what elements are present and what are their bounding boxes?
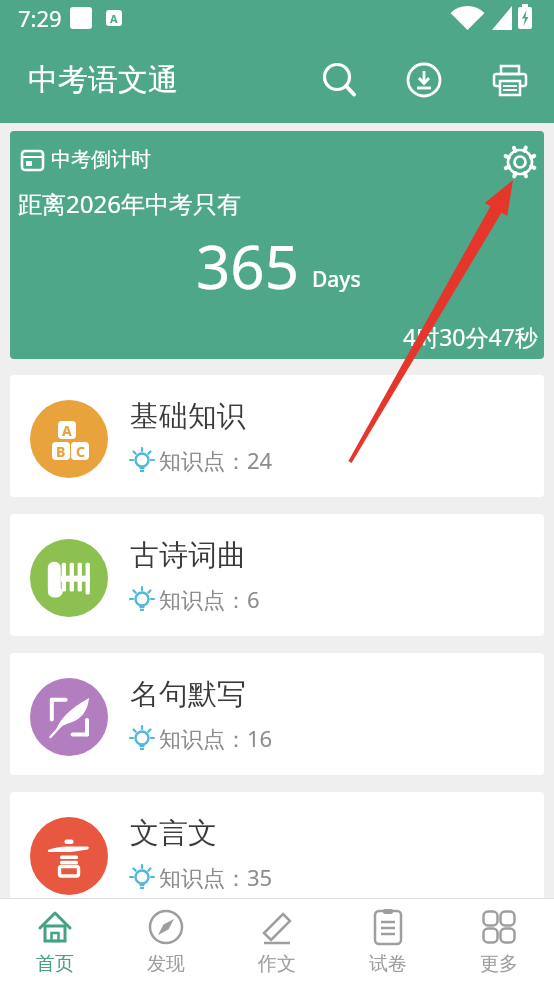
button[interactable]: 试卷 [332, 899, 443, 984]
staticText: 发现 [147, 952, 185, 976]
staticText: 名句默写 [130, 676, 246, 713]
button[interactable]: 首页 [0, 899, 110, 984]
button[interactable]: 发现 [110, 899, 221, 984]
staticText: 7:29 [18, 3, 62, 33]
staticText: 基础知识 [130, 398, 246, 435]
staticText: A [62, 421, 72, 439]
staticText: 文言文 [130, 815, 217, 852]
staticText: 作文 [258, 952, 296, 976]
staticText: 距离2026年中考只有 [18, 187, 241, 220]
button[interactable]: 更多 [443, 899, 554, 984]
button[interactable] [498, 140, 542, 184]
staticText: 365 [196, 225, 299, 307]
button[interactable]: A [10, 375, 544, 497]
staticText: C [76, 442, 85, 460]
staticText: 4时30分47秒 [403, 321, 538, 352]
button[interactable] [482, 52, 538, 108]
staticText: 古诗词曲 [130, 537, 246, 574]
button[interactable] [396, 52, 452, 108]
staticText: 中考倒计时 [51, 147, 151, 172]
staticText: 首页 [36, 952, 74, 976]
staticText: 更多 [480, 952, 518, 976]
staticText: 知识点：35 [159, 862, 273, 892]
button[interactable]: 作文 [221, 899, 332, 984]
button[interactable] [310, 52, 366, 108]
staticText: Days [312, 265, 361, 294]
button[interactable]: 文言文 [10, 792, 544, 914]
staticText: 知识点：24 [159, 445, 273, 475]
staticText: A [110, 11, 118, 26]
staticText: 中考语文通 [28, 61, 178, 99]
staticText: 知识点：6 [159, 584, 260, 614]
staticText: 知识点：16 [159, 723, 273, 753]
button[interactable]: 古诗词曲 [10, 514, 544, 636]
button[interactable]: 名句默写 [10, 653, 544, 775]
staticText: B [56, 442, 66, 460]
staticText: 试卷 [369, 952, 407, 976]
